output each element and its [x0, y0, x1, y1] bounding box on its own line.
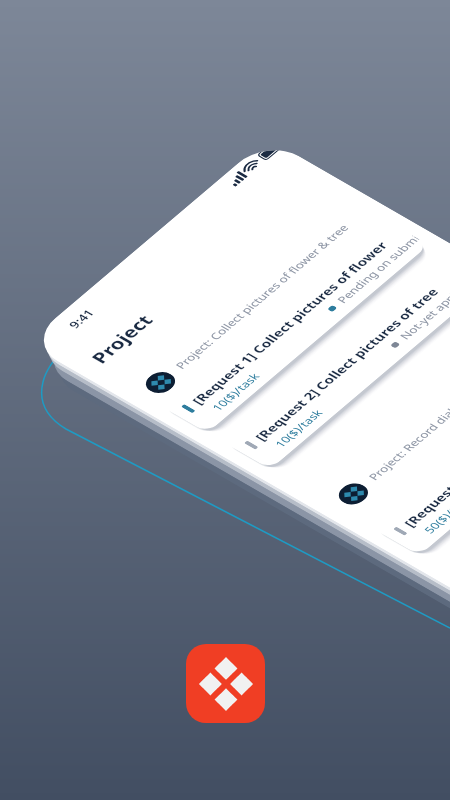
staticText: Project: [78, 307, 164, 370]
button[interactable]: Project: Record dialogue for AI: [313, 358, 450, 513]
button[interactable]: [Request 2] Collect pictures of tree: [196, 246, 450, 477]
button[interactable]: [Request 1] Collect pictures of flower: [133, 210, 450, 441]
staticText: [Request 1] Collect pictures of flower: [165, 236, 414, 410]
staticText: [Request 1] Record dialogue at home: [378, 359, 450, 532]
staticText: 10($)/task: [266, 405, 331, 452]
staticText: Not-yet applied: [388, 277, 450, 344]
staticText: 10($)/task: [203, 368, 268, 415]
staticText: Pending on submit: [324, 231, 431, 308]
staticText: Project: Collect pictures of flower & tr…: [152, 220, 372, 373]
button[interactable]: [Request 1] Record dialogue at home: [345, 332, 450, 563]
staticText: 50($)/task: [415, 491, 450, 538]
button[interactable]: Project: Collect pictures of flower & tr…: [115, 215, 380, 401]
staticText: Project: Record dialogue for AI: [349, 363, 450, 485]
button[interactable]: App icon: [186, 644, 265, 723]
staticText: 9:41: [62, 304, 100, 333]
staticText: [Request 2] Collect pictures of tree: [230, 282, 450, 446]
